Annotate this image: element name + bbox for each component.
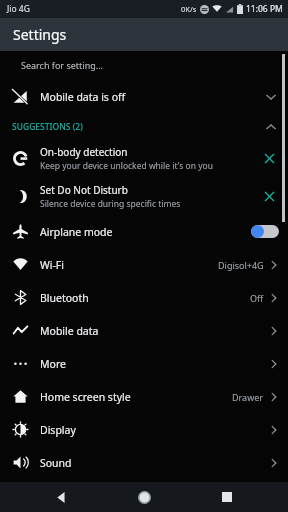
button[interactable]: Dismiss suggestion bbox=[254, 143, 284, 173]
staticText: Off bbox=[250, 292, 264, 304]
button[interactable]: On-body detection bbox=[0, 139, 288, 177]
button[interactable]: Dismiss suggestion bbox=[254, 181, 284, 211]
staticText: Bluetooth bbox=[40, 291, 89, 305]
staticText: Digisol+4G bbox=[218, 259, 264, 271]
button[interactable]: Airplane mode bbox=[0, 215, 288, 248]
staticText: Keep your device unlocked while it's on … bbox=[40, 160, 213, 172]
staticText: Sound bbox=[40, 456, 72, 470]
button[interactable]: Search for setting... bbox=[0, 51, 288, 79]
staticText: 0K/s bbox=[181, 4, 197, 14]
button[interactable]: Back bbox=[39, 482, 83, 512]
staticText: Airplane mode bbox=[40, 225, 113, 239]
button[interactable]: Wi-Fi bbox=[0, 248, 288, 281]
button[interactable]: Mobile data is off bbox=[0, 79, 288, 115]
staticText: Jio 4G bbox=[7, 3, 30, 15]
staticText: Settings bbox=[13, 25, 67, 44]
staticText: Home screen style bbox=[40, 390, 131, 404]
button[interactable]: Home bbox=[122, 482, 166, 512]
button[interactable]: Sound bbox=[0, 446, 288, 479]
staticText: Display bbox=[40, 423, 76, 437]
staticText: More bbox=[40, 357, 66, 371]
staticText: 11:06 PM bbox=[246, 3, 283, 15]
staticText: Mobile data bbox=[40, 324, 99, 338]
button[interactable]: SUGGESTIONS (2) bbox=[0, 115, 288, 139]
button[interactable]: Display bbox=[0, 413, 288, 446]
staticText: Set Do Not Disturb bbox=[40, 183, 128, 197]
staticText: On-body detection bbox=[40, 145, 128, 159]
button[interactable]: Home screen style bbox=[0, 380, 288, 413]
staticText: Search for setting... bbox=[21, 59, 103, 71]
button[interactable]: Mobile data bbox=[0, 314, 288, 347]
button[interactable]: More bbox=[0, 347, 288, 380]
staticText: Wi-Fi bbox=[40, 258, 65, 272]
button[interactable]: Set Do Not Disturb bbox=[0, 177, 288, 215]
button[interactable]: Airplane mode toggle bbox=[251, 225, 279, 238]
staticText: Mobile data is off bbox=[40, 90, 126, 104]
button[interactable]: Bluetooth bbox=[0, 281, 288, 314]
staticText: Drawer bbox=[232, 391, 264, 403]
button[interactable]: Recent apps bbox=[205, 482, 249, 512]
staticText: SUGGESTIONS (2) bbox=[12, 121, 83, 133]
staticText: Silence device during specific times bbox=[40, 198, 181, 210]
